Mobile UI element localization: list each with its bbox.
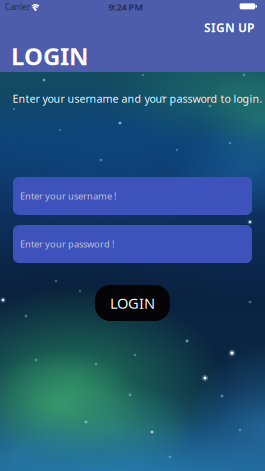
staticText: Carrier (5, 2, 30, 12)
staticText: 9:24 PM (108, 1, 143, 13)
button[interactable]: Enter your username ! (13, 177, 252, 215)
staticText: LOGIN (11, 40, 89, 72)
staticText: Enter your username and your password to… (12, 91, 262, 106)
staticText: Enter your password ! (20, 238, 115, 250)
staticText: LOGIN (110, 293, 155, 313)
button[interactable]: LOGIN (95, 285, 170, 321)
button[interactable]: Enter your password ! (13, 225, 252, 263)
button[interactable]: SIGN UP (204, 19, 254, 35)
staticText: Enter your username ! (20, 190, 117, 202)
staticText: SIGN UP (204, 19, 254, 35)
